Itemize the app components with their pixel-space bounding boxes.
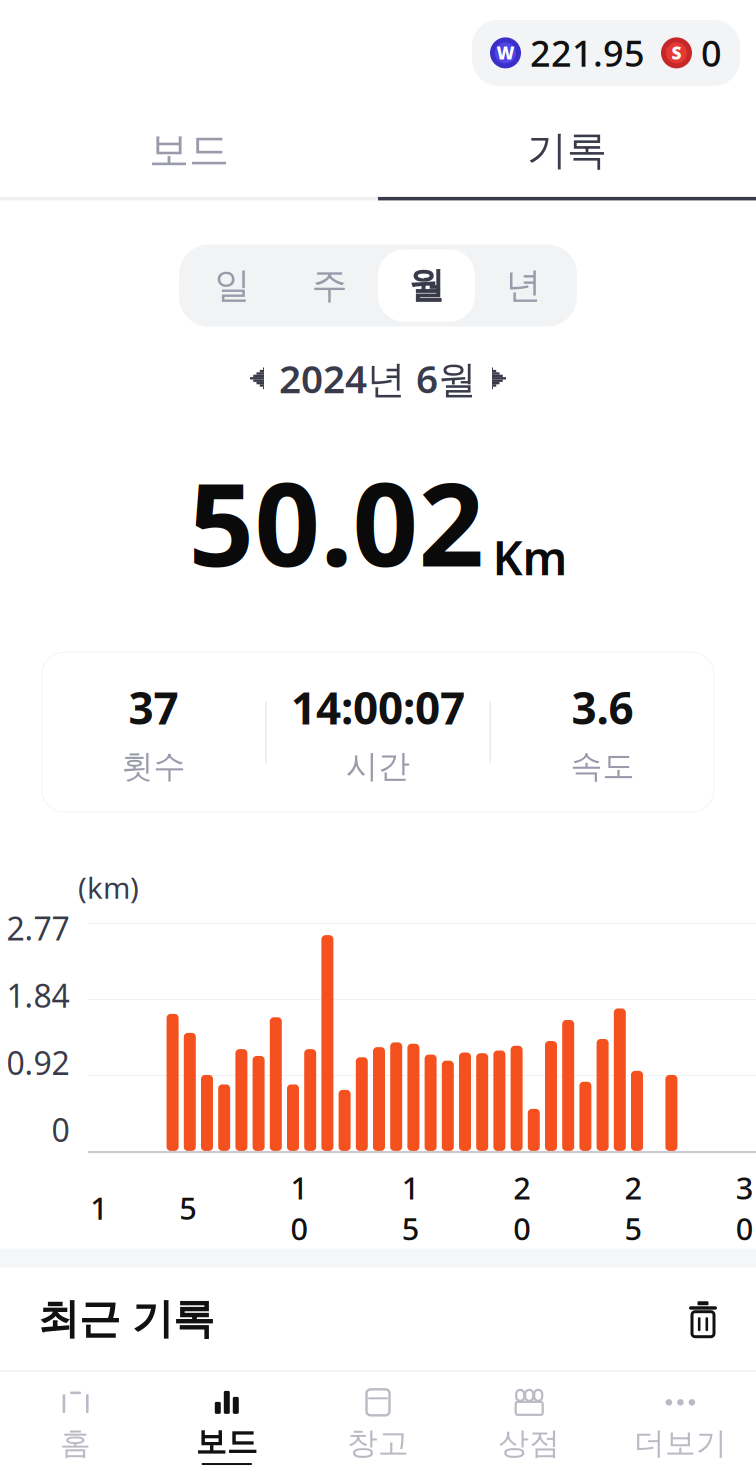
button[interactable]: W xyxy=(490,29,645,77)
staticText: 1 xyxy=(90,1187,108,1228)
staticText: 창고 xyxy=(347,1424,409,1462)
staticText: W xyxy=(496,41,514,64)
staticText: S xyxy=(671,41,681,64)
button[interactable]: 월 xyxy=(378,249,475,322)
staticText: 1.84 xyxy=(6,974,69,1017)
staticText: 2024년 6월 xyxy=(279,353,477,404)
button[interactable]: 창고 xyxy=(302,1383,454,1468)
staticText: 0 xyxy=(51,1108,69,1151)
button[interactable]: S xyxy=(661,29,722,77)
staticText: 주 xyxy=(311,263,347,308)
staticText: 5 xyxy=(179,1187,197,1228)
button[interactable]: 상점 xyxy=(454,1383,605,1468)
button[interactable]: 보드 xyxy=(151,1382,302,1469)
button[interactable]: 일 xyxy=(184,249,281,322)
staticText: 37 xyxy=(129,678,179,737)
staticText: 30 xyxy=(736,1167,754,1248)
staticText: 0.92 xyxy=(6,1041,69,1084)
staticText: Km xyxy=(492,526,567,588)
staticText: 더보기 xyxy=(634,1424,727,1462)
staticText: 14:00:07 xyxy=(291,678,465,737)
button[interactable]: 년 xyxy=(475,249,572,322)
staticText: (km) xyxy=(78,868,139,907)
staticText: 25 xyxy=(624,1167,642,1248)
staticText: 기록 xyxy=(527,126,607,175)
staticText: 20 xyxy=(513,1167,531,1248)
staticText: 횟수 xyxy=(122,747,186,786)
staticText: 0 xyxy=(701,29,722,77)
button[interactable]: 보드 xyxy=(0,98,378,200)
staticText: 최근 기록 xyxy=(38,1294,214,1344)
staticText: 221.95 xyxy=(530,29,645,77)
staticText: 상점 xyxy=(498,1424,560,1462)
staticText: 보드 xyxy=(196,1423,258,1461)
staticText: 년 xyxy=(505,263,541,308)
staticText: 월 xyxy=(408,263,444,308)
staticText: 보드 xyxy=(149,126,229,175)
button[interactable]: 이전 달 xyxy=(236,353,278,403)
button[interactable]: 더보기 xyxy=(605,1383,756,1468)
button[interactable]: 다음 달 xyxy=(478,353,520,403)
button[interactable]: 최근 기록 xyxy=(0,1268,756,1370)
staticText: 일 xyxy=(214,263,250,308)
button[interactable]: 홈 xyxy=(0,1383,151,1468)
staticText: 3.6 xyxy=(571,678,633,737)
button[interactable]: 주 xyxy=(281,249,378,322)
staticText: 15 xyxy=(402,1167,420,1248)
staticText: 10 xyxy=(290,1167,308,1248)
staticText: 50.02 xyxy=(188,446,484,598)
staticText: 2.77 xyxy=(6,907,69,949)
staticText: 시간 xyxy=(346,747,410,786)
button[interactable]: 기록 xyxy=(378,98,756,200)
staticText: 홈 xyxy=(60,1424,91,1462)
staticText: 속도 xyxy=(570,747,634,786)
